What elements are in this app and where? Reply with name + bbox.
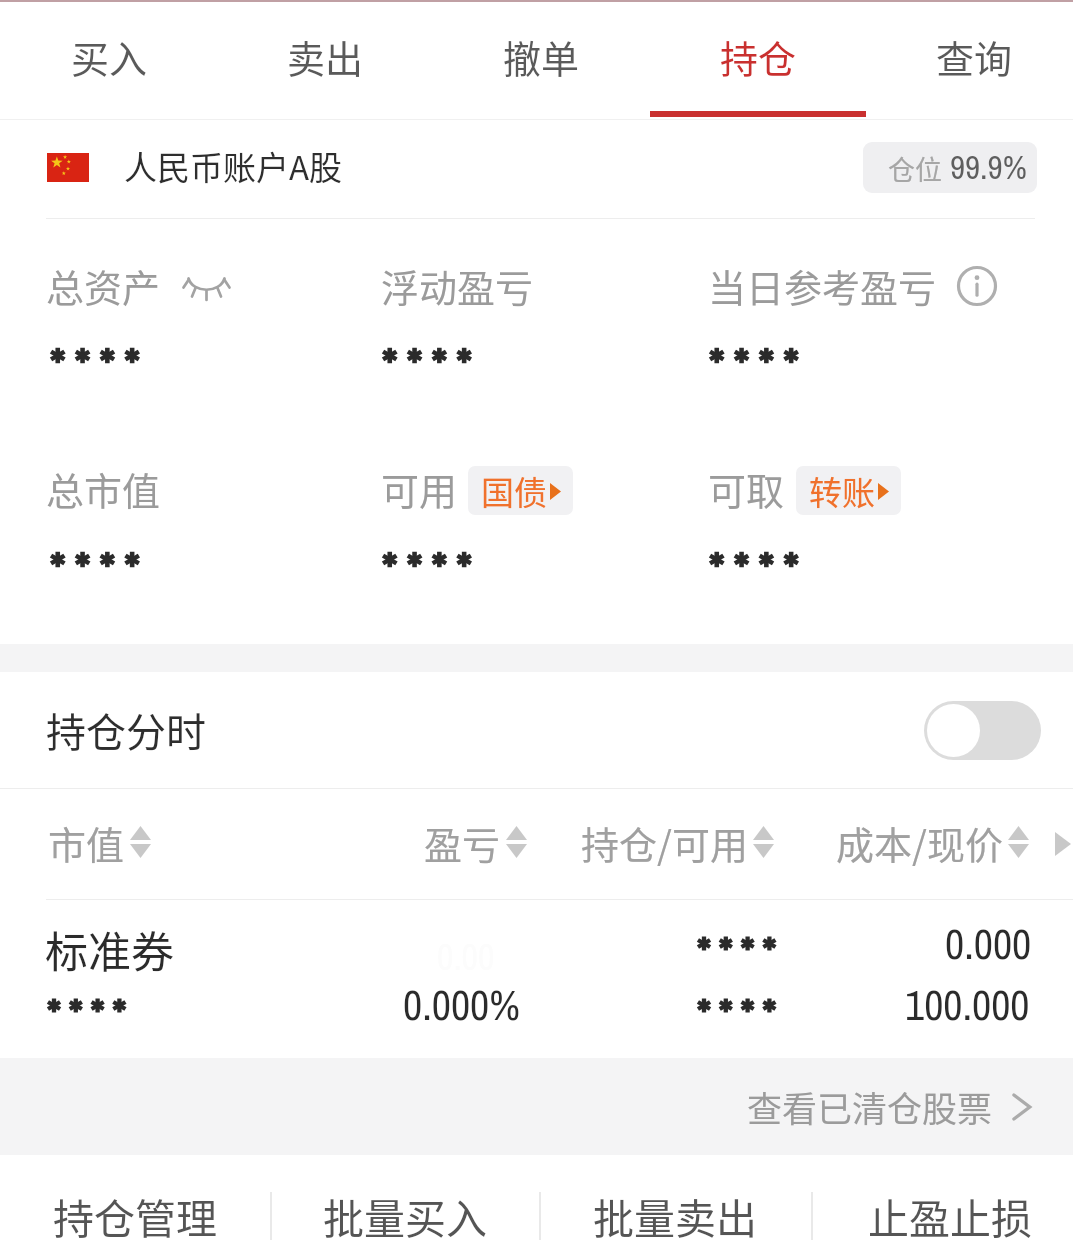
- staticText: 盈亏: [424, 815, 501, 870]
- button[interactable]: 查看已清仓股票: [0, 1058, 1035, 1155]
- button[interactable]: 持仓/可用: [581, 815, 774, 870]
- staticText: 持仓管理: [53, 1186, 217, 1245]
- staticText: 买入: [71, 29, 148, 84]
- staticText: 浮动盈亏: [381, 258, 534, 313]
- button[interactable]: 成本/现价: [836, 815, 1029, 870]
- staticText: 可用: [381, 461, 458, 516]
- button[interactable]: 仓位: [863, 142, 1037, 193]
- staticText: 标准券: [45, 918, 174, 980]
- staticText: 批量买入: [323, 1186, 487, 1245]
- staticText: 持仓分时: [46, 701, 206, 759]
- button[interactable]: 转账: [796, 466, 901, 515]
- staticText: 市值: [48, 815, 125, 870]
- staticText: 0.000: [945, 916, 1032, 973]
- staticText: 卖出: [287, 29, 364, 84]
- staticText: 转账: [809, 467, 875, 515]
- button[interactable]: 持仓: [650, 0, 866, 119]
- button[interactable]: 撤单: [433, 0, 649, 119]
- staticText: 99.9%: [950, 145, 1027, 189]
- button[interactable]: 盈亏: [424, 815, 527, 870]
- button[interactable]: 国债: [468, 466, 573, 515]
- staticText: 查询: [936, 29, 1013, 84]
- staticText: 当日参考盈亏: [708, 258, 937, 313]
- staticText: 持仓/可用: [581, 815, 748, 870]
- staticText: 100.000: [905, 977, 1030, 1034]
- staticText: 人民币账户A股: [124, 142, 343, 190]
- staticText: 查看已清仓股票: [747, 1081, 993, 1132]
- button[interactable]: 查询: [866, 0, 1073, 119]
- staticText: 仓位: [888, 149, 942, 188]
- button[interactable]: Toggle intraday chart: [924, 701, 1041, 760]
- staticText: 持仓: [720, 29, 797, 84]
- button[interactable]: More columns: [1055, 832, 1071, 856]
- staticText: 撤单: [503, 29, 580, 84]
- button[interactable]: 市值: [48, 815, 151, 870]
- button[interactable]: Info: [956, 265, 998, 307]
- button[interactable]: 止盈止损: [811, 1155, 1073, 1252]
- button[interactable]: 标准券: [0, 900, 1073, 1058]
- staticText: 总市值: [46, 461, 161, 516]
- staticText: 成本/现价: [836, 815, 1003, 870]
- staticText: 可取: [708, 461, 785, 516]
- staticText: 总资产: [46, 258, 161, 313]
- staticText: 国债: [481, 467, 547, 515]
- staticText: 批量卖出: [593, 1186, 757, 1245]
- button[interactable]: 卖出: [217, 0, 433, 119]
- button[interactable]: 买入: [1, 0, 217, 119]
- button[interactable]: 批量卖出: [539, 1155, 811, 1252]
- button[interactable]: 持仓管理: [0, 1155, 270, 1252]
- staticText: 0.000%: [403, 977, 520, 1034]
- staticText: 止盈止损: [868, 1186, 1032, 1245]
- button[interactable]: 人民币账户A股: [0, 117, 1073, 215]
- button[interactable]: Toggle asset visibility: [183, 276, 230, 312]
- button[interactable]: 批量买入: [270, 1155, 539, 1252]
